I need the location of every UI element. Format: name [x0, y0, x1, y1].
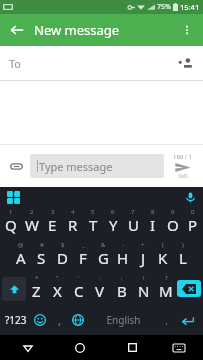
staticText: -	[122, 241, 124, 249]
staticText: S	[37, 248, 46, 268]
button[interactable]: !	[133, 272, 155, 305]
staticText: SMS	[178, 173, 189, 180]
button[interactable]: Keyboard menu	[5, 189, 21, 205]
staticText: 3	[51, 208, 55, 216]
staticText: +	[141, 241, 145, 249]
staticText: 8	[151, 208, 155, 216]
button[interactable]: Change language	[67, 305, 89, 335]
staticText: 160 / 1	[173, 153, 193, 161]
staticText: 2	[30, 208, 34, 216]
button[interactable]: Emoji	[29, 305, 51, 335]
staticText: I	[150, 215, 156, 235]
button[interactable]: )	[173, 239, 193, 272]
button[interactable]: (	[153, 239, 173, 272]
staticText: O	[167, 215, 179, 235]
button[interactable]: 5	[83, 206, 103, 239]
staticText: :	[99, 274, 101, 282]
staticText: Q	[5, 215, 17, 235]
staticText: To	[9, 56, 22, 71]
staticText: D	[57, 248, 68, 268]
staticText: !	[143, 274, 145, 282]
staticText: Z	[32, 281, 41, 301]
staticText: 75%	[157, 2, 171, 12]
staticText: #	[40, 241, 44, 249]
button[interactable]: +	[133, 239, 153, 272]
button[interactable]: #	[31, 239, 52, 272]
button[interactable]: Voice input	[182, 189, 198, 205]
staticText: )	[182, 241, 184, 249]
staticText: 7	[131, 208, 135, 216]
button[interactable]: Shift	[2, 277, 26, 301]
button[interactable]: Send SMS	[168, 153, 198, 180]
button[interactable]: Home	[67, 335, 93, 360]
button[interactable]: '	[68, 272, 89, 305]
staticText: 0	[191, 208, 195, 216]
button[interactable]: Attach	[5, 155, 27, 177]
button[interactable]: ;	[111, 272, 133, 305]
button[interactable]: 4	[63, 206, 83, 239]
staticText: English	[106, 313, 141, 327]
staticText: B	[117, 281, 127, 301]
staticText: ,	[58, 313, 61, 328]
button[interactable]: Back	[5, 18, 29, 42]
button[interactable]: Back	[15, 335, 41, 360]
staticText: T	[89, 215, 98, 235]
button[interactable]: @	[10, 239, 31, 272]
staticText: _	[82, 241, 85, 249]
button[interactable]: 1	[0, 206, 21, 239]
staticText: K	[158, 248, 168, 268]
staticText: 5	[91, 208, 95, 216]
button[interactable]: ?	[155, 272, 177, 305]
staticText: &	[101, 241, 106, 249]
staticText: Type message	[39, 159, 113, 174]
staticText: G	[98, 248, 109, 268]
staticText: ;	[121, 274, 123, 282]
button[interactable]: 7	[123, 206, 143, 239]
staticText: 4	[71, 208, 75, 216]
staticText: 9	[171, 208, 175, 216]
button[interactable]: $	[52, 239, 73, 272]
staticText: L	[179, 248, 187, 268]
button[interactable]: More options	[175, 18, 199, 42]
button[interactable]: 6	[103, 206, 123, 239]
staticText: 6	[111, 208, 115, 216]
staticText: 1	[9, 208, 13, 216]
staticText: R	[68, 215, 78, 235]
button[interactable]: :	[89, 272, 111, 305]
button[interactable]: &	[93, 239, 113, 272]
button[interactable]: 8	[143, 206, 163, 239]
staticText: N	[138, 281, 150, 301]
button[interactable]: Add recipient	[173, 51, 197, 75]
button[interactable]: 9	[163, 206, 183, 239]
button[interactable]: Recent apps	[119, 335, 145, 360]
staticText: U	[128, 215, 139, 235]
staticText: .	[165, 313, 168, 328]
button[interactable]: Switch keyboard	[166, 335, 192, 360]
staticText: $	[61, 241, 65, 249]
staticText: P	[188, 215, 198, 235]
staticText: V	[95, 281, 105, 301]
staticText: M	[159, 281, 173, 301]
button[interactable]: English	[89, 305, 158, 335]
staticText: J	[141, 248, 146, 268]
button[interactable]: Backspace	[177, 280, 201, 297]
button[interactable]: Type message	[30, 154, 164, 178]
button[interactable]: ?123	[3, 305, 29, 335]
button[interactable]: Enter	[174, 305, 200, 335]
button[interactable]: "	[47, 272, 68, 305]
button[interactable]: _	[73, 239, 93, 272]
button[interactable]: 0	[183, 206, 203, 239]
staticText: C	[74, 281, 84, 301]
staticText: *	[35, 274, 39, 282]
button[interactable]: 3	[42, 206, 63, 239]
button[interactable]: ,	[51, 305, 67, 335]
button[interactable]: -	[113, 239, 133, 272]
staticText: ?	[165, 274, 168, 282]
button[interactable]: .	[158, 305, 174, 335]
staticText: X	[53, 281, 62, 301]
staticText: H	[117, 248, 129, 268]
button[interactable]: *	[26, 272, 47, 305]
staticText: @	[18, 241, 24, 249]
button[interactable]: 2	[21, 206, 42, 239]
staticText: E	[48, 215, 57, 235]
